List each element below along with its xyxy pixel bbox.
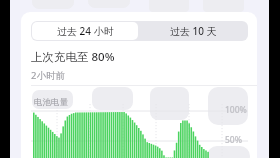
staticText: 50%	[225, 134, 242, 146]
staticText: 100%	[225, 104, 247, 116]
button[interactable]: 过去 24 小时	[32, 22, 138, 40]
staticText: 2小时前	[31, 69, 65, 82]
staticText: 上次充电至 80%	[31, 49, 115, 65]
staticText: 电池电量	[34, 97, 68, 108]
staticText: 过去 10 天	[170, 24, 217, 38]
button[interactable]: 过去 10 天	[139, 21, 248, 41]
staticText: 过去 24 小时	[57, 24, 114, 38]
